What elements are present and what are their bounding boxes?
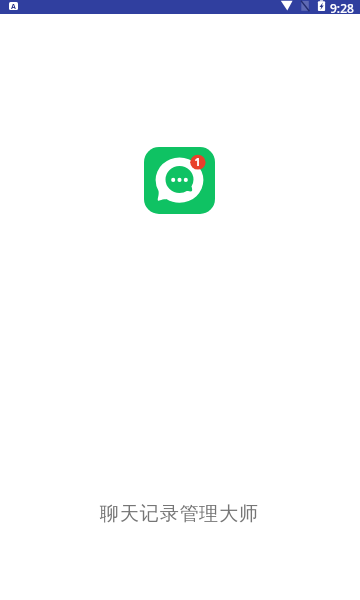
staticText: 1 [194, 155, 201, 169]
staticText: 9:28 [330, 0, 354, 14]
staticText: A [11, 2, 16, 10]
staticText: 聊天记录管理大师 [100, 502, 259, 526]
